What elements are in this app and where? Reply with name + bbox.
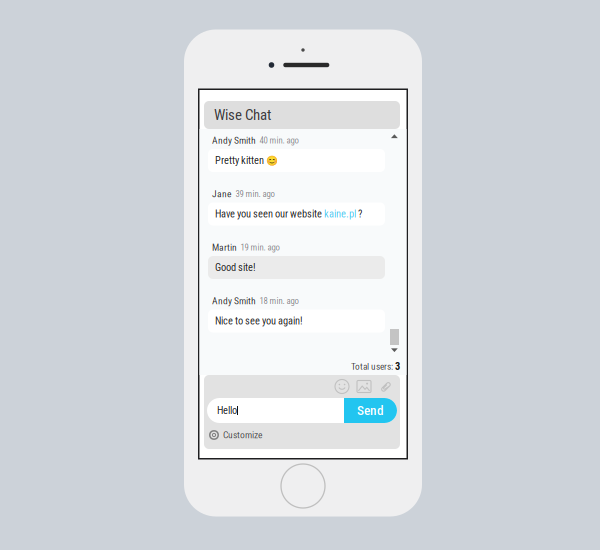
staticText: 😊 — [266, 155, 278, 166]
button[interactable]: Customize — [207, 423, 267, 447]
staticText: Customize — [223, 429, 263, 441]
staticText: Wise Chat — [214, 106, 271, 124]
staticText: kaine.pl — [324, 208, 356, 220]
staticText: 19 min. ago — [240, 242, 279, 253]
staticText: Hello — [217, 404, 237, 417]
staticText: Nice to see you again! — [215, 315, 303, 327]
button[interactable]: Send — [344, 398, 397, 423]
staticText: 3 — [395, 360, 400, 373]
button[interactable]: Attach file — [375, 377, 397, 396]
staticText: ? — [356, 208, 362, 220]
staticText: Pretty kitten — [215, 154, 266, 167]
staticText: 18 min. ago — [259, 296, 298, 306]
staticText: 40 min. ago — [259, 135, 298, 146]
staticText: Send — [357, 403, 384, 418]
staticText: Andy Smith — [212, 135, 256, 146]
button[interactable]: Send image — [353, 377, 375, 396]
staticText: Jane — [212, 188, 232, 200]
button[interactable]: Emoji — [331, 377, 353, 396]
staticText: 39 min. ago — [235, 189, 274, 199]
staticText: Good site! — [215, 261, 256, 274]
staticText: Martin — [212, 242, 237, 253]
staticText: Andy Smith — [212, 295, 256, 307]
staticText: Have you seen our website — [215, 208, 324, 220]
staticText: Total users: — [351, 361, 395, 372]
